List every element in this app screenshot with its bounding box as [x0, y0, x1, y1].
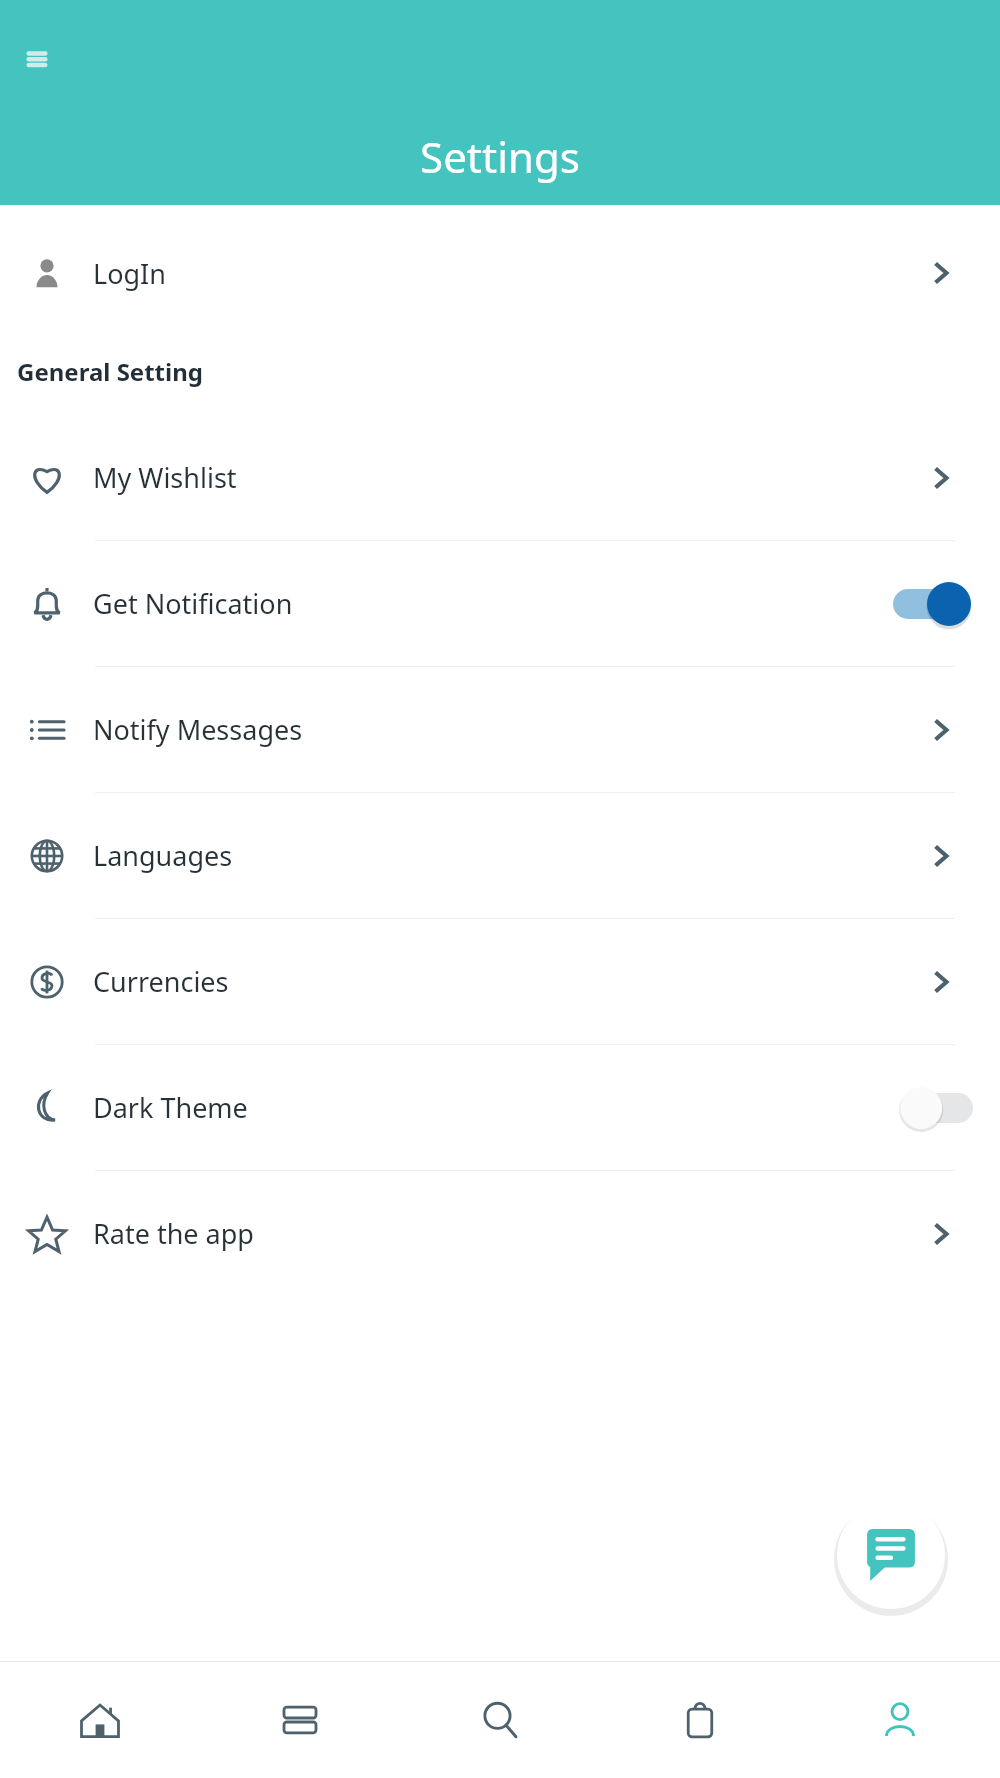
button[interactable]: Search [400, 1662, 600, 1778]
button[interactable]: Cart [600, 1662, 800, 1778]
other: Open [924, 461, 958, 495]
other: Open [924, 256, 958, 290]
other: Open [924, 1217, 958, 1251]
staticText: Currencies [93, 963, 229, 1000]
other: Open [924, 713, 958, 747]
button[interactable]: Categories [200, 1662, 400, 1778]
button[interactable]: Chat [837, 1501, 945, 1609]
staticText: My Wishlist [93, 459, 237, 496]
staticText: General Setting [17, 355, 203, 388]
other: Open [924, 965, 958, 999]
button[interactable]: Profile [800, 1662, 1000, 1778]
button[interactable]: Menu [17, 38, 57, 78]
staticText: LogIn [93, 255, 166, 292]
button[interactable]: Get Notification [0, 541, 1000, 666]
button[interactable]: LogIn [0, 237, 1000, 309]
button[interactable]: Dark Theme toggle [893, 1087, 973, 1129]
staticText: Languages [93, 837, 233, 874]
staticText: Rate the app [93, 1215, 254, 1252]
staticText: Notify Messages [93, 711, 303, 748]
button[interactable]: Dark Theme [0, 1045, 1000, 1170]
button[interactable]: Rate the app [0, 1171, 1000, 1296]
button[interactable]: My Wishlist [0, 415, 1000, 540]
button[interactable]: Home [0, 1662, 200, 1778]
other: Open [924, 839, 958, 873]
button[interactable]: Notify Messages [0, 667, 1000, 792]
staticText: Settings [420, 128, 580, 185]
button[interactable]: Get Notification toggle [893, 583, 973, 625]
staticText: Get Notification [93, 585, 293, 622]
button[interactable]: Currencies [0, 919, 1000, 1044]
staticText: Dark Theme [93, 1089, 248, 1126]
button[interactable]: Languages [0, 793, 1000, 918]
